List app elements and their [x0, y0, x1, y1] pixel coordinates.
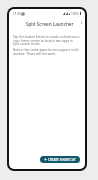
- button[interactable]: CREATE SHORTCUT: [40, 156, 80, 163]
- button[interactable]: More options: [77, 18, 85, 27]
- staticText: Split Screen Launcher: [26, 21, 74, 27]
- staticText: Tap the button below to create a shortcu…: [13, 35, 80, 45]
- staticText: Notice that some apps do not support mul…: [13, 48, 80, 55]
- staticText: CREATE SHORTCUT: [48, 158, 76, 162]
- staticText: 11:20: [13, 12, 21, 16]
- staticText: 100%: [71, 12, 79, 16]
